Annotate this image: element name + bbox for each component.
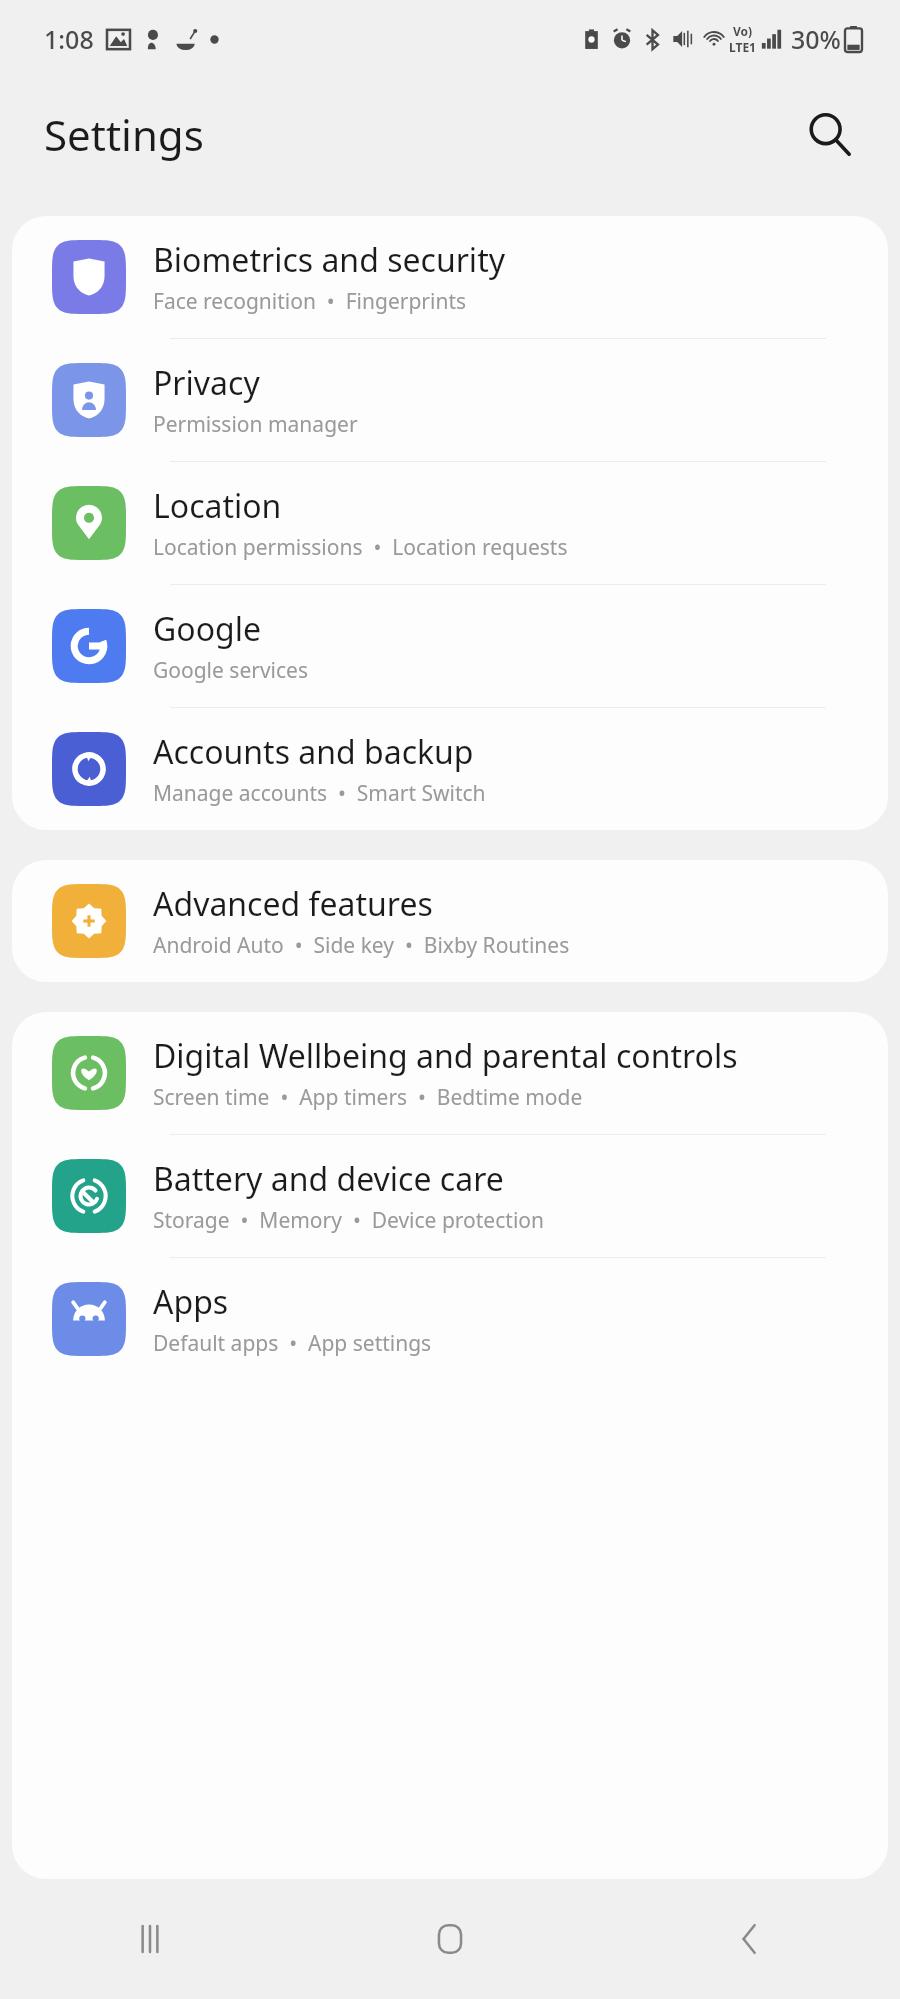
staticText: Default apps • App settings (153, 1329, 432, 1358)
button[interactable]: Advanced features (12, 860, 888, 982)
button[interactable]: Back (600, 1879, 900, 1999)
button[interactable]: Location (12, 462, 888, 585)
staticText: Biometrics and security (153, 238, 506, 282)
staticText: 1:08 (44, 22, 94, 56)
staticText: Vo) (733, 23, 753, 39)
staticText: 30% (791, 22, 841, 56)
button[interactable]: Digital Wellbeing and parental controls (12, 1012, 888, 1135)
staticText: Google services (153, 656, 308, 685)
staticText: Battery and device care (153, 1157, 504, 1201)
button[interactable]: Home (300, 1879, 600, 1999)
button[interactable]: Privacy (12, 339, 888, 462)
staticText: Storage • Memory • Device protection (153, 1206, 544, 1235)
button[interactable]: Search (798, 103, 860, 165)
staticText: Permission manager (153, 410, 358, 439)
staticText: Privacy (153, 361, 260, 405)
button[interactable]: Biometrics and security (12, 216, 888, 339)
staticText: Manage accounts • Smart Switch (153, 779, 486, 808)
staticText: Settings (44, 106, 798, 163)
staticText: LTE1 (729, 39, 756, 55)
staticText: Android Auto • Side key • Bixby Routines (153, 931, 570, 960)
button[interactable]: Battery and device care (12, 1135, 888, 1258)
button[interactable]: Apps (12, 1258, 888, 1380)
staticText: Face recognition • Fingerprints (153, 287, 467, 316)
button[interactable]: Accounts and backup (12, 708, 888, 830)
staticText: Accounts and backup (153, 730, 474, 774)
staticText: Google (153, 607, 262, 651)
staticText: Digital Wellbeing and parental controls (153, 1034, 738, 1078)
staticText: Advanced features (153, 882, 433, 926)
staticText: Apps (153, 1280, 229, 1324)
staticText: Screen time • App timers • Bedtime mode (153, 1083, 583, 1112)
button[interactable]: Google (12, 585, 888, 708)
staticText: Location permissions • Location requests (153, 533, 568, 562)
staticText: Location (153, 484, 282, 528)
button[interactable]: Recent apps (0, 1879, 300, 1999)
